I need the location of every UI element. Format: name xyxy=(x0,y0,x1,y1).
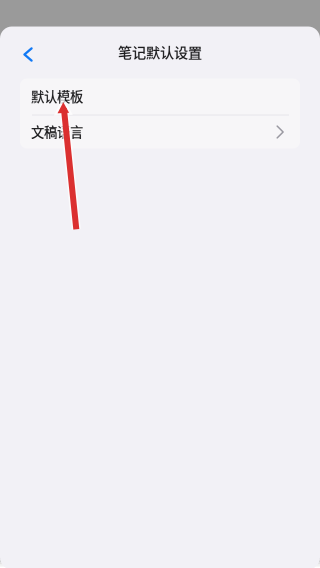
button[interactable]: Back xyxy=(8,31,48,73)
staticText: 文稿语言 xyxy=(31,122,83,141)
staticText: 笔记默认设置 xyxy=(118,41,202,62)
staticText: 默认模板 xyxy=(31,86,83,106)
button[interactable]: 默认模板 xyxy=(20,78,300,114)
button[interactable]: 文稿语言 xyxy=(20,115,300,148)
